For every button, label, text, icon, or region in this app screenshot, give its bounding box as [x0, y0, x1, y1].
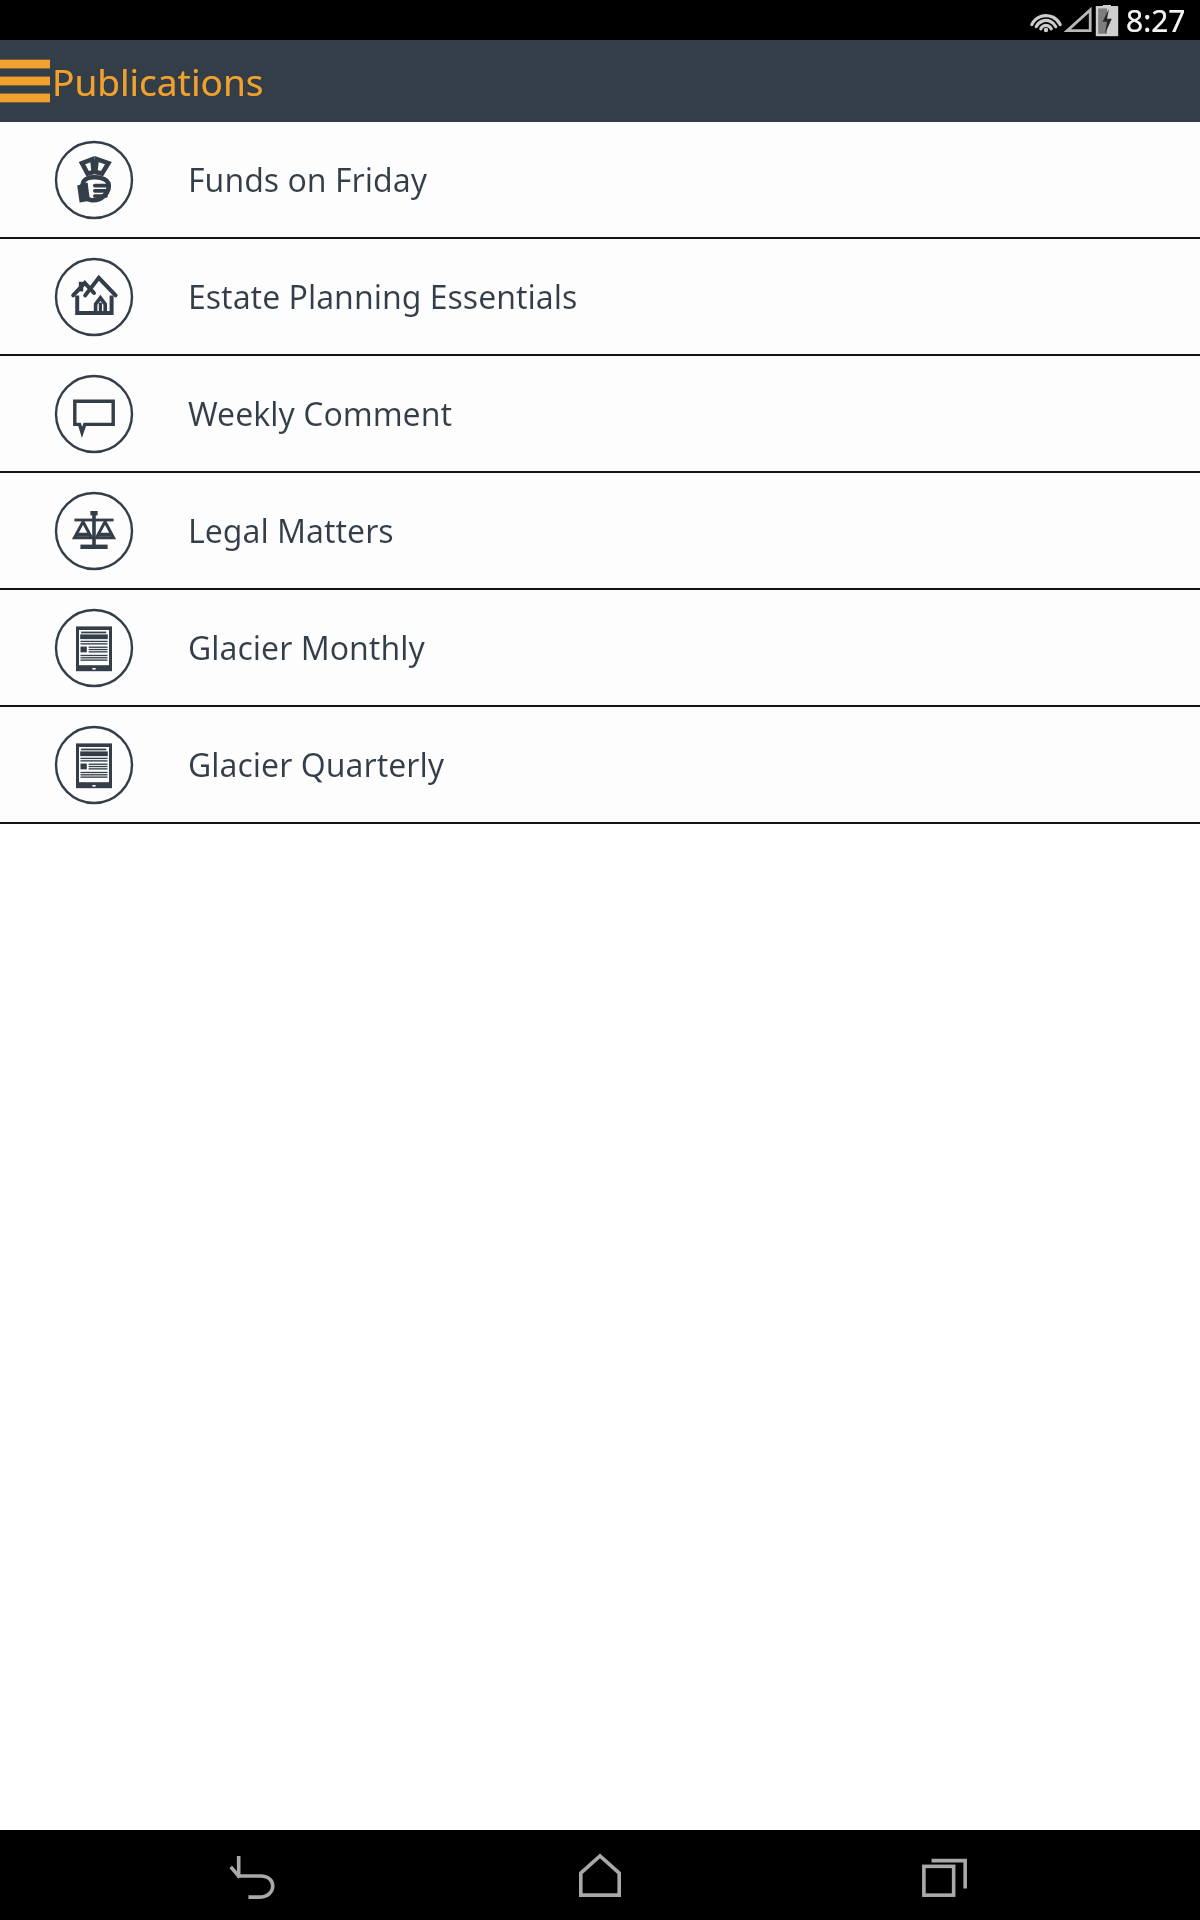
button[interactable]: Open navigation drawer [0, 40, 52, 122]
button[interactable]: Home [510, 1830, 690, 1920]
button[interactable]: Recent apps [855, 1830, 1035, 1920]
staticText: Glacier Quarterly [188, 743, 445, 787]
staticText: 8:27 [1126, 0, 1186, 40]
button[interactable]: Legal Matters [0, 473, 1200, 588]
button[interactable]: Weekly Comment [0, 356, 1200, 471]
button[interactable]: Back [165, 1830, 345, 1920]
button[interactable]: Glacier Quarterly [0, 707, 1200, 822]
staticText: Funds on Friday [188, 158, 427, 202]
staticText: Glacier Monthly [188, 626, 425, 670]
staticText: Estate Planning Essentials [188, 275, 578, 319]
staticText: Publications [52, 56, 264, 106]
staticText: Weekly Comment [188, 392, 453, 436]
staticText: Legal Matters [188, 509, 394, 553]
button[interactable]: Glacier Monthly [0, 590, 1200, 705]
button[interactable]: Estate Planning Essentials [0, 239, 1200, 354]
button[interactable]: Funds on Friday [0, 122, 1200, 237]
